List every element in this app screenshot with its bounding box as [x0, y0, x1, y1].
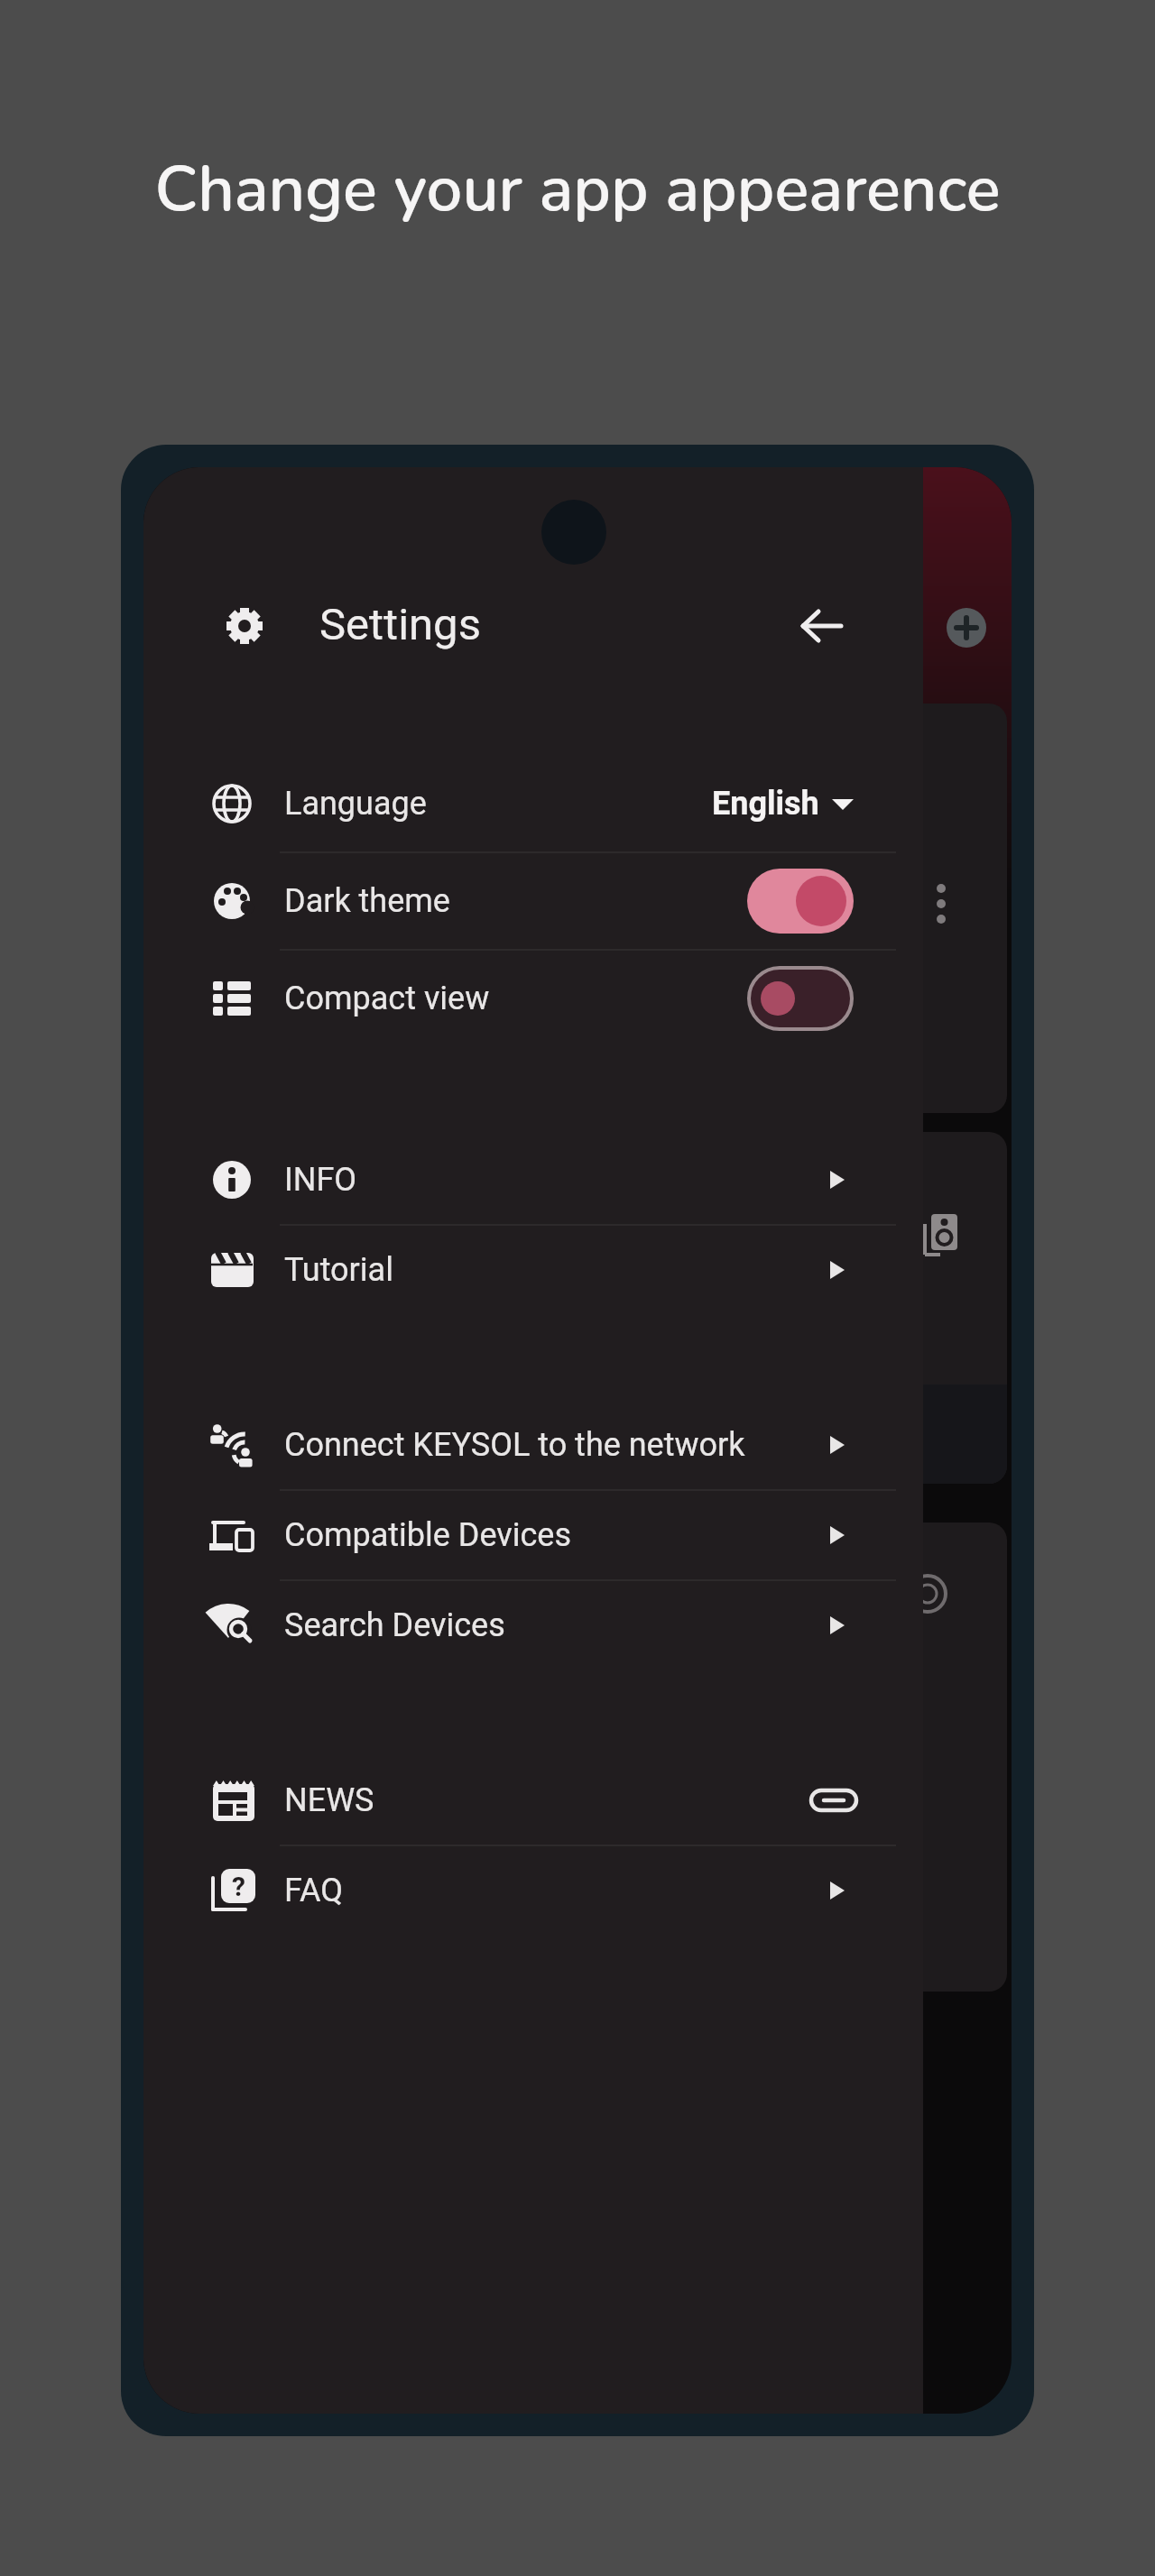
button[interactable]: Connect KEYSOL to the network: [143, 1400, 923, 1490]
staticText: Search Devices: [284, 1606, 505, 1644]
staticText: NEWS: [284, 1781, 374, 1819]
button[interactable]: Compact view: [143, 953, 923, 1044]
button[interactable]: [947, 608, 986, 648]
staticText: ?: [232, 1871, 245, 1902]
button[interactable]: Compatible Devices: [143, 1490, 923, 1580]
staticText: Compatible Devices: [284, 1516, 572, 1554]
button[interactable]: ?: [143, 1845, 923, 1936]
button[interactable]: Tutorial: [143, 1225, 923, 1315]
staticText: Dark theme: [284, 882, 450, 920]
button[interactable]: Dark theme: [143, 856, 923, 946]
button[interactable]: [779, 583, 865, 669]
staticText: Settings: [319, 599, 481, 650]
button[interactable]: NEWS: [143, 1755, 923, 1845]
button[interactable]: INFO: [143, 1135, 923, 1225]
button[interactable]: Language: [143, 759, 923, 849]
staticText: Tutorial: [284, 1251, 393, 1289]
staticText: Compact view: [284, 980, 490, 1017]
staticText: English: [712, 785, 819, 823]
staticText: Connect KEYSOL to the network: [284, 1426, 745, 1464]
staticText: INFO: [284, 1161, 357, 1199]
staticText: Change your app appearence: [154, 146, 1001, 233]
button[interactable]: Search Devices: [143, 1580, 923, 1670]
staticText: Language: [284, 785, 427, 823]
button[interactable]: [201, 583, 288, 669]
staticText: FAQ: [284, 1872, 343, 1909]
